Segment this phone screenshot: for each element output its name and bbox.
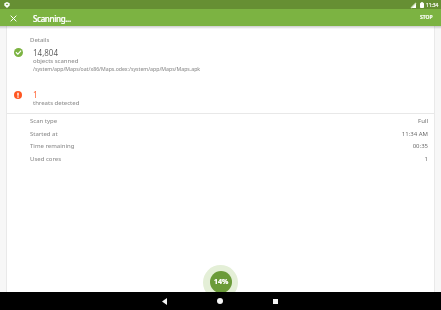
staticText: 11:34 AM [401, 130, 428, 138]
staticText: Used cores [30, 155, 62, 163]
staticText: Full [418, 117, 428, 125]
staticText: 1 [424, 155, 428, 163]
staticText: Scan type [30, 117, 58, 125]
staticText: threats detected [33, 99, 80, 107]
staticText: Time remaining [30, 142, 75, 150]
button[interactable] [213, 294, 227, 308]
staticText: Scanning... [33, 13, 71, 24]
staticText: 14,804 [33, 47, 59, 58]
staticText: 14% [214, 277, 229, 287]
staticText: /system/app/Maps/oat/x86/Maps.odex:/syst… [33, 65, 201, 72]
staticText: STOP [420, 14, 433, 21]
staticText: 00:35 [412, 142, 428, 150]
staticText: 11:34 [426, 2, 439, 9]
staticText: Started at [30, 130, 58, 138]
button[interactable] [157, 294, 171, 308]
staticText: 1 [33, 89, 38, 100]
staticText: objects scanned [33, 57, 79, 65]
button[interactable] [268, 294, 282, 308]
button[interactable] [7, 12, 19, 24]
button[interactable]: STOP [413, 9, 439, 26]
staticText: Details [30, 36, 50, 44]
